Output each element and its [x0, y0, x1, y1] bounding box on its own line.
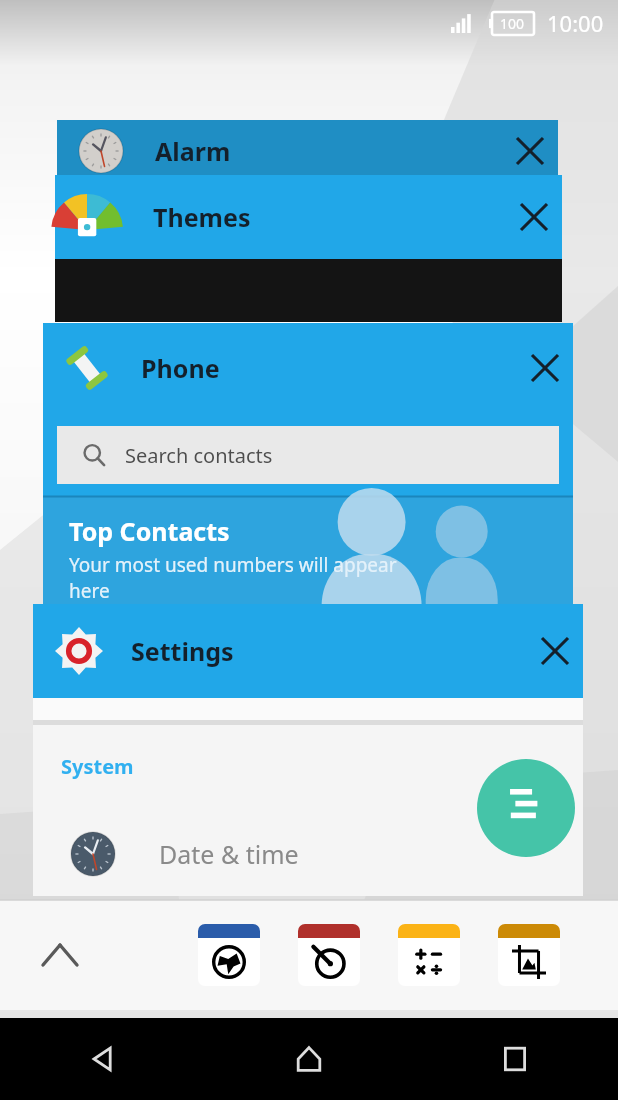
- button[interactable]: Search settings: [477, 759, 575, 857]
- button[interactable]: Settings: [33, 604, 583, 896]
- staticText: System: [61, 753, 134, 780]
- button[interactable]: Recents: [412, 1018, 618, 1100]
- staticText: Date & time: [159, 837, 299, 871]
- button[interactable]: Photo editor: [498, 924, 560, 986]
- button[interactable]: Browser: [198, 924, 260, 986]
- staticText: Search contacts: [125, 442, 273, 469]
- button[interactable]: Timer: [298, 924, 360, 986]
- button[interactable]: Alarm: [57, 120, 558, 182]
- staticText: 100: [500, 14, 525, 33]
- button[interactable]: Date & time: [33, 812, 583, 896]
- button[interactable]: Calculator: [398, 924, 460, 986]
- button[interactable]: Back: [0, 1018, 206, 1100]
- button[interactable]: Search contacts: [57, 426, 559, 484]
- button[interactable]: Phone: [43, 323, 573, 614]
- button[interactable]: Themes: [55, 175, 562, 322]
- staticText: Phone: [141, 351, 220, 385]
- button[interactable]: Close Phone: [517, 340, 573, 396]
- staticText: Top Contacts: [69, 514, 230, 548]
- button[interactable]: Close Themes: [506, 189, 562, 245]
- staticText: Themes: [153, 200, 251, 234]
- staticText: Settings: [131, 634, 234, 668]
- button[interactable]: Home: [206, 1018, 412, 1100]
- staticText: Your most used numbers will appear here: [69, 552, 414, 604]
- button[interactable]: Close Settings: [527, 623, 583, 679]
- button[interactable]: Close Alarm: [502, 123, 558, 179]
- staticText: 10:00: [547, 8, 604, 38]
- staticText: Alarm: [155, 134, 231, 168]
- button[interactable]: Expand: [32, 927, 88, 983]
